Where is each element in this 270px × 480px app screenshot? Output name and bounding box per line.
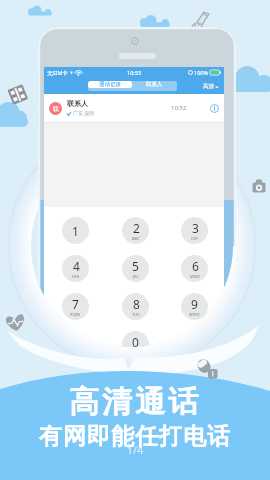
staticText: 联系人 [146,81,163,88]
button[interactable]: 5 [122,255,149,282]
staticText: 广东 深圳 [73,110,95,117]
staticText: 4 [73,258,80,274]
button[interactable]: 高清 [198,83,224,90]
staticText: MNO [190,274,200,279]
staticText: 2 [133,220,140,236]
staticText: DEF [191,236,199,241]
button[interactable]: 1 [62,217,89,244]
staticText: 8 [133,296,140,312]
button[interactable]: 联 [44,94,224,122]
staticText: 高清 [203,83,214,90]
staticText: GHI [72,274,80,279]
button[interactable]: 2 [122,217,149,244]
staticText: 高清通话 [0,383,270,421]
staticText: 联系人 [67,99,88,108]
staticText: 通话记录 [99,81,121,88]
staticText: WXYZ [189,312,200,317]
staticText: 7 [72,296,79,312]
staticText: 1 [72,223,79,239]
staticText: JKL [133,274,139,279]
staticText: 6 [192,258,199,274]
button[interactable]: 6 [181,255,208,282]
staticText: 100% [194,69,209,76]
button[interactable]: 7 [62,293,89,320]
staticText: 3 [192,220,199,236]
button[interactable]: 联系人 [132,81,177,88]
staticText: 5 [132,258,139,274]
staticText: 0 [132,334,139,350]
staticText: 有网即能任打电话 [0,422,270,451]
button[interactable]: 0 [122,331,149,358]
button[interactable]: 8 [122,293,149,320]
staticText: 10:52 [171,104,187,112]
staticText: 9 [191,296,198,312]
staticText: ABC [132,236,140,241]
staticText: 联 [53,105,59,113]
staticText: 无SIM卡 [47,69,68,77]
staticText: TUV [132,312,140,317]
staticText: 1/4 [0,442,270,457]
button[interactable]: 通话记录 [88,81,132,88]
button[interactable]: 9 [181,293,208,320]
staticText: 10:53 [127,69,142,76]
button[interactable]: 3 [181,217,208,244]
button[interactable]: Details [210,104,219,113]
staticText: PQRS [70,312,81,317]
button[interactable]: 4 [62,255,89,282]
